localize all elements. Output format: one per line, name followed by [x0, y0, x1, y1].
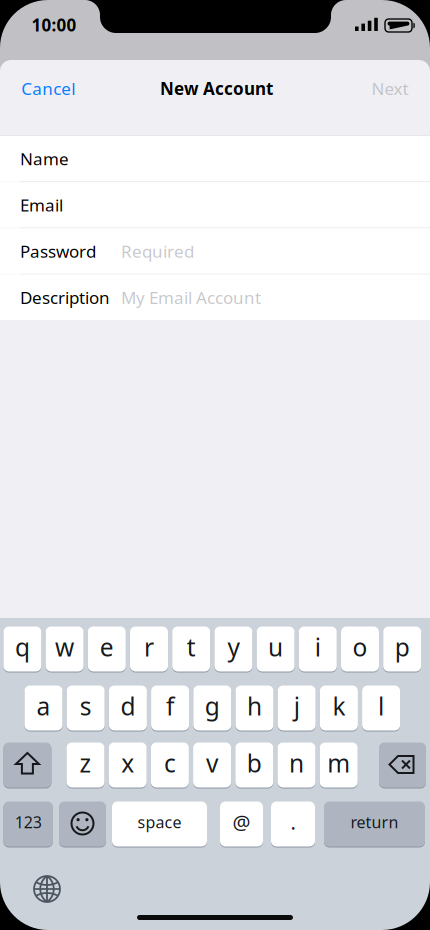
staticText: g — [205, 689, 220, 723]
staticText: p — [395, 630, 410, 664]
staticText: i — [315, 630, 321, 664]
button[interactable]: n — [277, 742, 315, 788]
staticText: y — [227, 630, 239, 664]
button[interactable]: h — [235, 685, 273, 731]
staticText: . — [290, 808, 295, 836]
button[interactable]: Email — [0, 182, 430, 228]
button[interactable]: e — [88, 626, 126, 672]
staticText: space — [137, 811, 181, 833]
staticText: w — [55, 630, 74, 664]
staticText: Password — [20, 239, 96, 263]
staticText: 10:00 — [31, 13, 76, 37]
staticText: o — [352, 630, 367, 664]
button[interactable]: space — [112, 801, 207, 847]
button[interactable]: v — [193, 742, 231, 788]
staticText: u — [268, 630, 283, 664]
button[interactable]: i — [299, 626, 337, 672]
button[interactable]: c — [151, 742, 189, 788]
button[interactable]: Shift — [3, 742, 51, 788]
button[interactable]: s — [67, 685, 105, 731]
button[interactable]: Next keyboard — [27, 869, 67, 909]
staticText: m — [327, 746, 350, 780]
staticText: n — [289, 746, 304, 780]
staticText: return — [350, 811, 398, 833]
button[interactable]: k — [320, 685, 358, 731]
staticText: Name — [20, 147, 69, 170]
staticText: z — [79, 746, 91, 780]
staticText: k — [332, 689, 345, 723]
button[interactable]: Name — [0, 136, 430, 181]
staticText: 123 — [15, 811, 42, 833]
staticText: c — [164, 746, 176, 780]
staticText: f — [166, 689, 174, 723]
button[interactable]: return — [324, 801, 425, 847]
button[interactable]: Emoji — [59, 801, 106, 847]
button[interactable]: f — [151, 685, 189, 731]
staticText: d — [120, 689, 135, 723]
staticText: My Email Account — [121, 286, 261, 309]
staticText: @ — [232, 808, 250, 836]
staticText: q — [15, 630, 30, 664]
button[interactable]: p — [383, 626, 421, 672]
button[interactable]: 123 — [3, 801, 53, 847]
button[interactable]: @ — [220, 801, 263, 847]
button[interactable]: . — [271, 801, 315, 847]
button[interactable]: Delete — [379, 742, 426, 788]
button[interactable]: Next — [359, 66, 421, 110]
staticText: s — [80, 689, 92, 723]
button[interactable]: Cancel — [8, 66, 88, 110]
staticText: Next — [371, 77, 408, 100]
staticText: t — [187, 630, 196, 664]
staticText: x — [121, 746, 134, 780]
button[interactable]: z — [66, 742, 104, 788]
button[interactable]: y — [214, 626, 252, 672]
staticText: Description — [20, 286, 110, 309]
button[interactable]: m — [320, 742, 358, 788]
button[interactable]: w — [46, 626, 84, 672]
staticText: l — [378, 689, 384, 723]
staticText: j — [294, 689, 300, 723]
button[interactable]: l — [362, 685, 400, 731]
button[interactable]: Description — [0, 274, 430, 320]
button[interactable]: r — [130, 626, 168, 672]
staticText: Email — [20, 193, 63, 216]
staticText: Required — [121, 239, 194, 263]
button[interactable]: o — [341, 626, 379, 672]
button[interactable]: b — [235, 742, 273, 788]
button[interactable]: t — [172, 626, 210, 672]
staticText: b — [247, 746, 262, 780]
button[interactable]: j — [278, 685, 316, 731]
button[interactable]: q — [3, 626, 41, 672]
staticText: a — [36, 689, 50, 723]
button[interactable]: g — [193, 685, 231, 731]
button[interactable]: u — [257, 626, 295, 672]
button[interactable]: Password — [0, 228, 430, 274]
button[interactable]: d — [109, 685, 147, 731]
button[interactable]: x — [109, 742, 147, 788]
button[interactable]: a — [24, 685, 62, 731]
staticText: r — [144, 630, 154, 664]
staticText: Cancel — [21, 77, 75, 100]
staticText: New Account — [160, 77, 273, 100]
staticText: h — [247, 689, 262, 723]
staticText: e — [100, 630, 114, 664]
staticText: v — [206, 746, 218, 780]
